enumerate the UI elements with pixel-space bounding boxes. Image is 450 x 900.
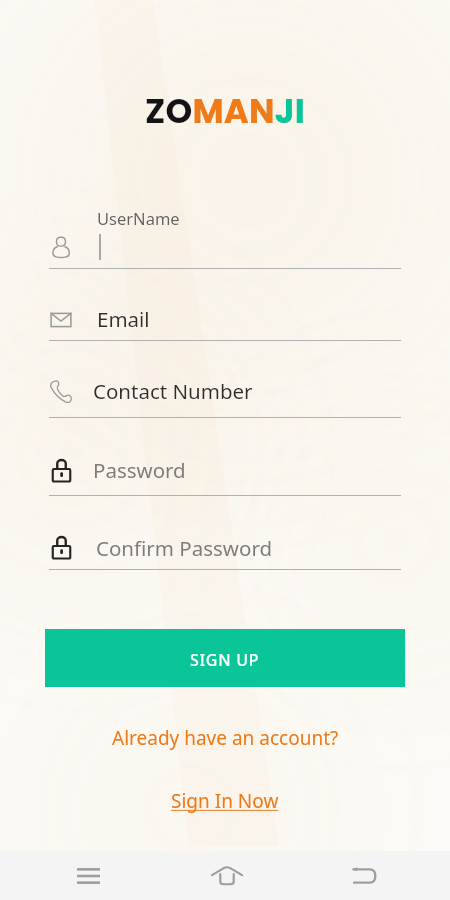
button[interactable]: Back <box>333 851 394 900</box>
button[interactable]: UserName <box>0 220 450 268</box>
staticText: UserName <box>97 207 180 229</box>
button[interactable]: Sign In Now <box>165 786 285 816</box>
button[interactable]: Already have an account? <box>106 723 345 753</box>
button[interactable]: SIGN UP <box>45 629 405 687</box>
staticText: Email <box>97 305 150 333</box>
staticText: Confirm Password <box>96 534 273 562</box>
staticText: Contact Number <box>93 377 253 405</box>
button[interactable]: Home <box>196 851 257 900</box>
button[interactable]: Password <box>0 447 450 495</box>
staticText: ZOMANJI <box>145 87 305 135</box>
button[interactable]: Recent apps <box>58 851 119 900</box>
staticText: SIGN UP <box>190 649 260 671</box>
staticText: Sign In Now <box>171 788 279 814</box>
staticText: Already have an account? <box>112 725 339 751</box>
button[interactable]: Contact Number <box>0 369 450 417</box>
button[interactable]: Confirm Password <box>0 521 450 569</box>
button[interactable]: Email <box>0 292 450 340</box>
staticText: Password <box>93 456 186 484</box>
